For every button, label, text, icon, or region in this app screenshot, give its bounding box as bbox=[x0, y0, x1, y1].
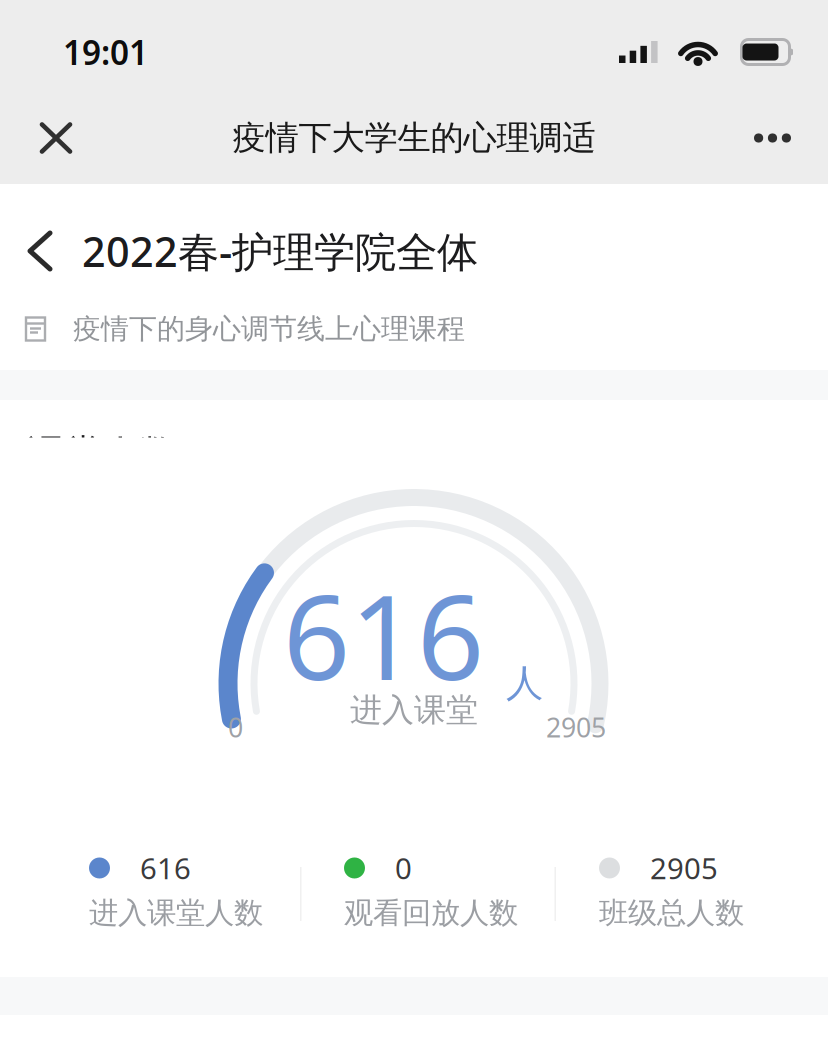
staticText: 人 bbox=[506, 660, 543, 706]
staticText: 19:01 bbox=[63, 30, 148, 74]
staticText: 疫情下大学生的心理调适 bbox=[232, 117, 595, 158]
staticText: 班级总人数 bbox=[599, 895, 744, 931]
button[interactable]: Close bbox=[15, 98, 97, 177]
staticText: 2905 bbox=[546, 709, 606, 745]
staticText: 进入课堂 bbox=[350, 690, 478, 730]
staticText: 疫情下的身心调节线上心理课程 bbox=[73, 312, 465, 346]
button[interactable]: Back bbox=[0, 216, 828, 286]
staticText: 2022春-护理学院全体 bbox=[82, 224, 478, 278]
staticText: 观看回放人数 bbox=[344, 895, 518, 931]
staticText: 进入课堂人数 bbox=[89, 895, 263, 931]
staticText: 616 bbox=[283, 556, 484, 712]
staticText: 课堂人数 bbox=[28, 431, 176, 476]
staticText: 0 bbox=[395, 848, 412, 887]
staticText: 2905 bbox=[650, 848, 718, 887]
staticText: 616 bbox=[140, 848, 191, 887]
button[interactable]: More options bbox=[732, 99, 813, 177]
staticText: 0 bbox=[228, 709, 243, 745]
